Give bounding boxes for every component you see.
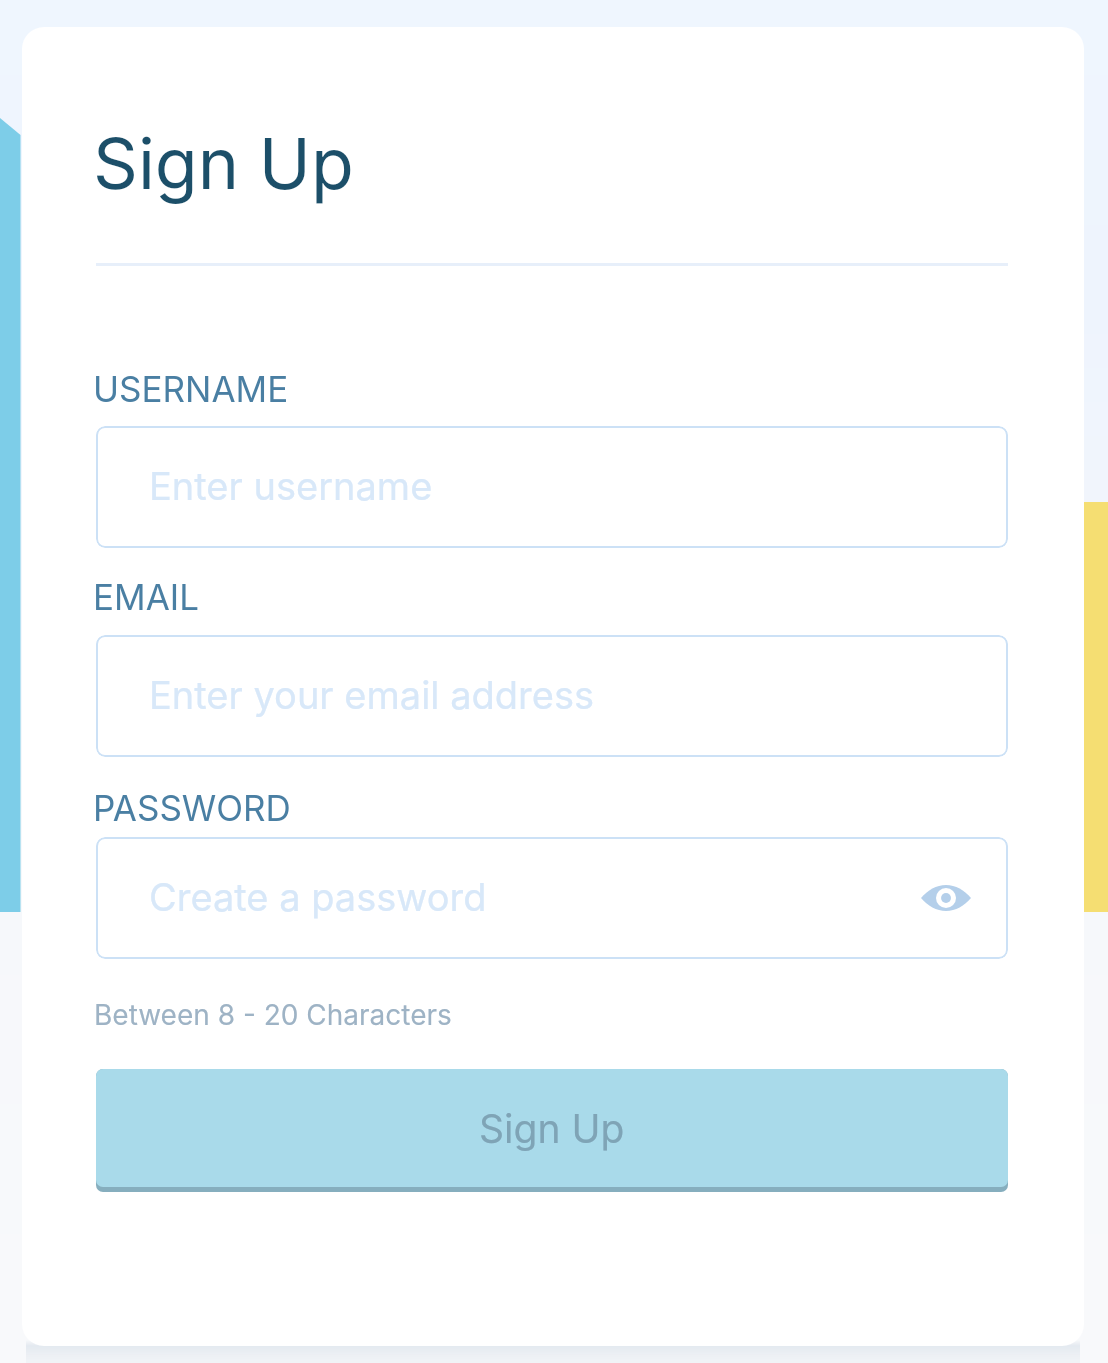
button[interactable]: Create a password: [96, 837, 1008, 959]
staticText: Between 8 - 20 Characters: [94, 998, 452, 1032]
staticText: Sign Up: [479, 1105, 625, 1152]
staticText: Enter your email address: [149, 672, 595, 718]
staticText: EMAIL: [93, 576, 199, 618]
staticText: Sign Up: [93, 121, 354, 206]
staticText: Enter username: [149, 463, 433, 509]
button[interactable]: Sign Up: [96, 1069, 1008, 1187]
staticText: USERNAME: [93, 368, 289, 410]
button[interactable]: Enter username: [96, 426, 1008, 548]
button[interactable]: Show password: [915, 867, 977, 929]
staticText: Create a password: [149, 874, 487, 920]
button[interactable]: Enter your email address: [96, 635, 1008, 757]
staticText: PASSWORD: [93, 787, 291, 829]
